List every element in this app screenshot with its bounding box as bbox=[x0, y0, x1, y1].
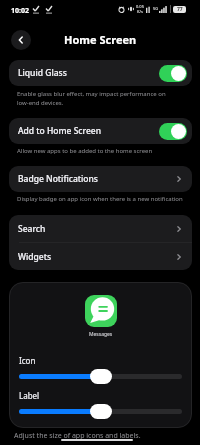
button[interactable]: Badge Notifications bbox=[9, 166, 192, 192]
button[interactable]: Icon size slider bbox=[90, 369, 112, 384]
staticText: Widgets bbox=[18, 251, 175, 263]
staticText: Enable glass blur effect, may impact per… bbox=[17, 90, 185, 107]
staticText: 77 bbox=[177, 6, 183, 13]
staticText: Add to Home Screen bbox=[18, 125, 159, 137]
staticText: Badge Notifications bbox=[18, 173, 175, 185]
button[interactable]: Add to Home Screen bbox=[9, 118, 192, 144]
staticText: Liquid Glass bbox=[18, 67, 159, 79]
button[interactable]: Search bbox=[9, 215, 192, 242]
staticText: Allow new apps to be added to the home s… bbox=[17, 147, 185, 155]
staticText: Home Screen bbox=[64, 32, 137, 47]
staticText: Messages bbox=[89, 331, 113, 338]
staticText: Label bbox=[19, 390, 40, 401]
staticText: 10:02 bbox=[11, 6, 29, 16]
button[interactable]: Back bbox=[11, 30, 31, 50]
button[interactable]: Label size slider bbox=[90, 404, 112, 419]
button[interactable]: Widgets bbox=[9, 243, 192, 270]
staticText: 5G bbox=[153, 6, 159, 11]
staticText: Search bbox=[18, 223, 175, 235]
staticText: K/s bbox=[137, 9, 143, 14]
staticText: 0.05 bbox=[136, 4, 144, 9]
staticText: Display badge on app icon when there is … bbox=[17, 195, 185, 203]
staticText: Adjust the size of app icons and labels. bbox=[14, 431, 141, 441]
button[interactable]: Liquid Glass bbox=[9, 60, 192, 86]
staticText: Icon bbox=[19, 355, 36, 366]
